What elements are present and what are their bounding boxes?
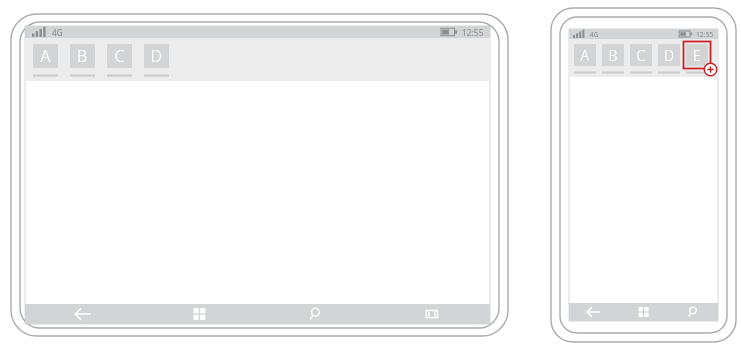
- button[interactable]: Windows Phone pivot tab wireframes: [0, 0, 741, 350]
